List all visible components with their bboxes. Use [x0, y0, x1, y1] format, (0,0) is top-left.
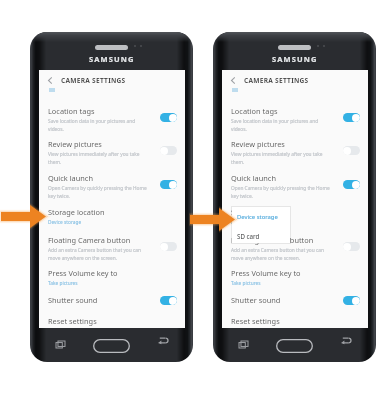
button[interactable]: Back	[39, 70, 185, 90]
button[interactable]: Toggle on	[160, 113, 177, 122]
staticText: Location tags	[231, 106, 278, 116]
button[interactable]: Device storage	[232, 207, 290, 226]
staticText: Press Volume key to	[231, 268, 301, 278]
staticText: Quick launch	[231, 173, 276, 183]
staticText: Device storage	[237, 213, 278, 221]
button[interactable]: Home	[276, 339, 313, 353]
button[interactable]: Press Volume key to	[39, 266, 185, 290]
button[interactable]: Floating Camera button	[222, 233, 368, 263]
button[interactable]: Toggle on	[343, 113, 360, 122]
button[interactable]: Quick launch	[39, 171, 185, 201]
staticText: Device storage	[48, 219, 82, 226]
staticText: Add an extra Camera button that you can …	[48, 247, 141, 261]
staticText: Device storage	[231, 219, 265, 226]
staticText: CAMERA SETTINGS	[244, 76, 309, 85]
staticText: Floating Camera button	[231, 235, 314, 245]
button[interactable]: Toggle on	[160, 296, 177, 305]
staticText: SAMSUNG	[89, 54, 135, 64]
staticText: Press Volume key to	[48, 268, 118, 278]
staticText: Take pictures	[48, 280, 78, 287]
staticText: Open Camera by quickly pressing the Home…	[231, 185, 330, 199]
button[interactable]: Review pictures	[39, 137, 185, 167]
button[interactable]: Press Volume key to	[222, 266, 368, 290]
button[interactable]: Shutter sound	[39, 293, 185, 311]
button[interactable]: Review pictures	[222, 137, 368, 167]
button[interactable]: Toggle off	[160, 146, 177, 155]
button[interactable]: Floating Camera button	[39, 233, 185, 263]
staticText: CAMERA SETTINGS	[61, 76, 126, 85]
staticText: Shutter sound	[48, 295, 98, 305]
other: Back	[48, 77, 52, 84]
staticText: Reset settings	[48, 316, 97, 326]
button[interactable]: Back	[222, 70, 368, 90]
button[interactable]: Toggle on	[343, 180, 360, 189]
staticText: Quick launch	[48, 173, 93, 183]
button[interactable]: Toggle off	[160, 242, 177, 251]
staticText: View pictures immediately after you take…	[48, 151, 140, 165]
button[interactable]: Location tags	[39, 104, 185, 134]
button[interactable]: Toggle on	[160, 180, 177, 189]
button[interactable]: Shutter sound	[222, 293, 368, 311]
button[interactable]: Recents	[239, 341, 248, 348]
staticText: SAMSUNG	[272, 54, 318, 64]
button[interactable]: Back	[341, 337, 351, 344]
staticText: Take pictures	[231, 280, 261, 287]
button[interactable]: Toggle off	[343, 242, 360, 251]
other: Step 1	[1, 205, 46, 228]
staticText: Floating Camera button	[48, 235, 131, 245]
button[interactable]: Home	[93, 339, 130, 353]
button[interactable]: Reset settings	[39, 314, 185, 332]
staticText: Shutter sound	[231, 295, 281, 305]
staticText: Open Camera by quickly pressing the Home…	[48, 185, 147, 199]
button[interactable]: Reset settings	[222, 314, 368, 332]
button[interactable]: SD card	[232, 228, 290, 243]
button[interactable]: Quick launch	[222, 171, 368, 201]
staticText: SD card	[237, 232, 260, 240]
button[interactable]: Storage location	[39, 205, 185, 229]
other: Back	[231, 77, 235, 84]
staticText: View pictures immediately after you take…	[231, 151, 323, 165]
staticText: Save location data in your pictures and …	[48, 118, 136, 132]
staticText: Add an extra Camera button that you can …	[231, 247, 324, 261]
staticText: Review pictures	[48, 139, 102, 149]
button[interactable]: Storage location	[222, 205, 368, 229]
staticText: Save location data in your pictures and …	[231, 118, 319, 132]
button[interactable]: Back	[158, 337, 168, 344]
staticText: Location tags	[48, 106, 95, 116]
button[interactable]: Toggle on	[343, 296, 360, 305]
staticText: Storage location	[48, 207, 105, 217]
staticText: Review pictures	[231, 139, 285, 149]
button[interactable]: Toggle off	[343, 146, 360, 155]
other: Step 2	[190, 208, 235, 231]
staticText: Reset settings	[231, 316, 280, 326]
button[interactable]: Recents	[56, 341, 65, 348]
staticText: Storage location	[231, 207, 288, 217]
button[interactable]: Location tags	[222, 104, 368, 134]
